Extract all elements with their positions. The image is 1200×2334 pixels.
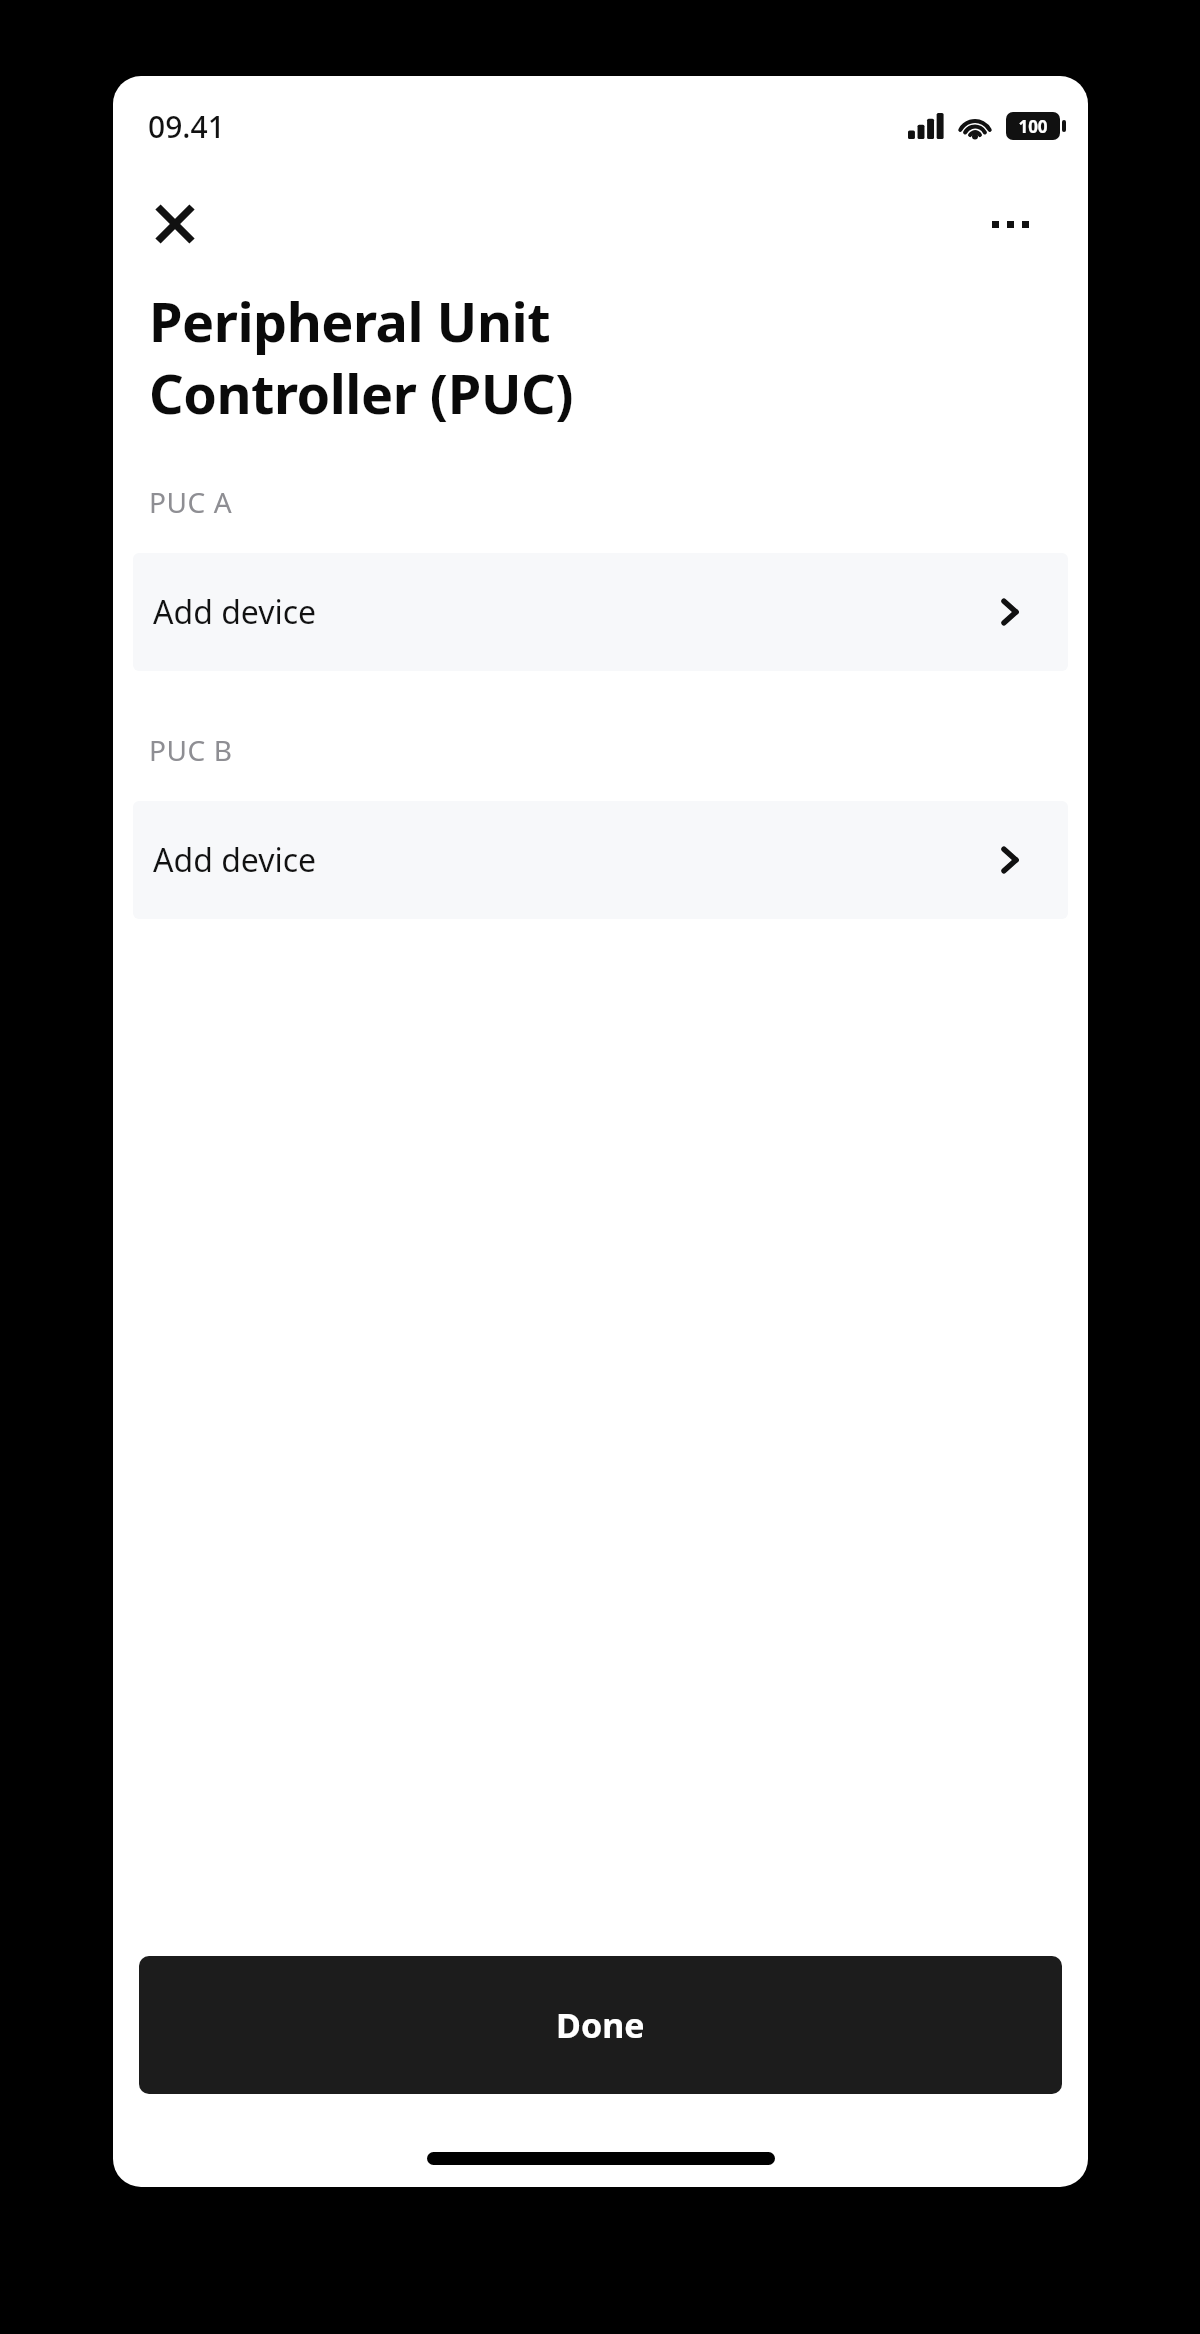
staticText: PUC B [149,731,233,769]
staticText: 100 [1018,115,1048,138]
button[interactable]: Add device [133,801,1068,919]
staticText: Peripheral Unit Controller (PUC) [149,284,1058,429]
staticText: Done [556,2002,645,2048]
staticText: Add device [153,590,317,634]
staticText: Add device [153,838,317,882]
button[interactable]: Done [139,1956,1062,2094]
staticText: 09.41 [148,106,225,147]
staticText: PUC A [149,483,233,521]
button[interactable]: More options [978,192,1042,256]
button[interactable]: Add device [133,553,1068,671]
button[interactable]: Close [143,192,207,256]
